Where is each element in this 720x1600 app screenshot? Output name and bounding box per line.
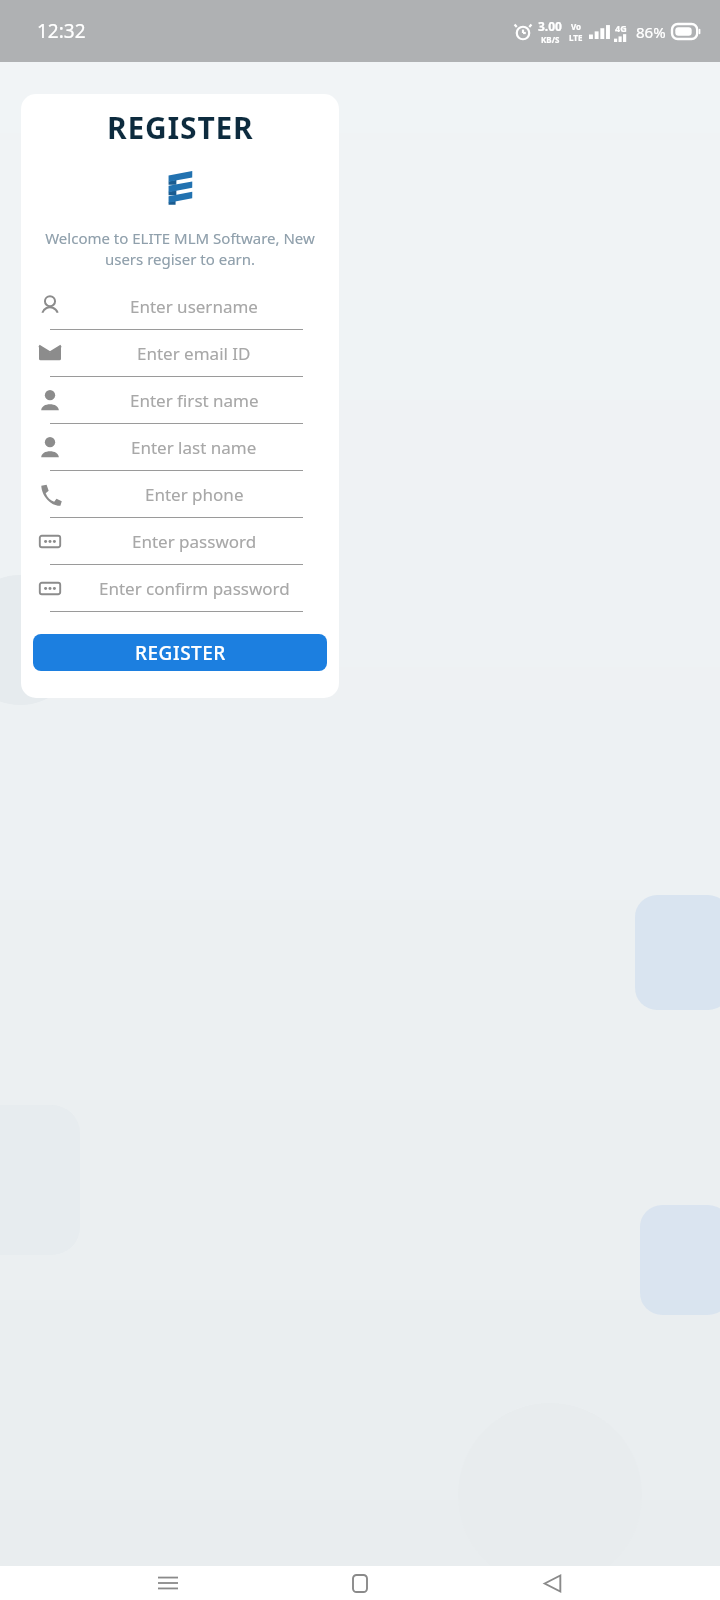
button[interactable]: Back bbox=[16, 78, 78, 140]
button[interactable]: Enter email ID bbox=[21, 330, 339, 377]
staticText: REGISTER bbox=[107, 107, 254, 148]
staticText: Enter password bbox=[132, 530, 257, 553]
button[interactable]: Enter password bbox=[21, 518, 339, 565]
button[interactable]: REGISTER bbox=[33, 634, 327, 671]
button[interactable]: Enter confirm password bbox=[21, 565, 339, 612]
staticText: 12:32 bbox=[37, 18, 86, 44]
staticText: Enter phone bbox=[145, 483, 244, 506]
button[interactable]: Enter first name bbox=[21, 377, 339, 424]
staticText: Vo bbox=[571, 21, 582, 32]
button[interactable]: Home bbox=[336, 1566, 384, 1600]
button[interactable]: Enter username bbox=[21, 283, 339, 330]
button[interactable]: Recent apps bbox=[144, 1566, 192, 1600]
staticText: Enter confirm password bbox=[99, 577, 290, 600]
staticText: KB/S bbox=[541, 34, 560, 45]
staticText: LTE bbox=[569, 32, 583, 43]
staticText: 3.00 bbox=[538, 18, 562, 34]
staticText: Welcome to ELITE MLM Software, New users… bbox=[45, 228, 315, 270]
button[interactable]: Enter phone bbox=[21, 471, 339, 518]
button[interactable]: Enter last name bbox=[21, 424, 339, 471]
staticText: Enter last name bbox=[131, 436, 257, 459]
staticText: 86% bbox=[636, 22, 666, 42]
staticText: Enter email ID bbox=[137, 342, 251, 365]
staticText: 4G bbox=[615, 22, 627, 34]
button[interactable]: Back bbox=[528, 1566, 576, 1600]
staticText: Enter first name bbox=[130, 389, 259, 412]
staticText: Enter username bbox=[130, 295, 258, 318]
staticText: REGISTER bbox=[135, 640, 226, 666]
